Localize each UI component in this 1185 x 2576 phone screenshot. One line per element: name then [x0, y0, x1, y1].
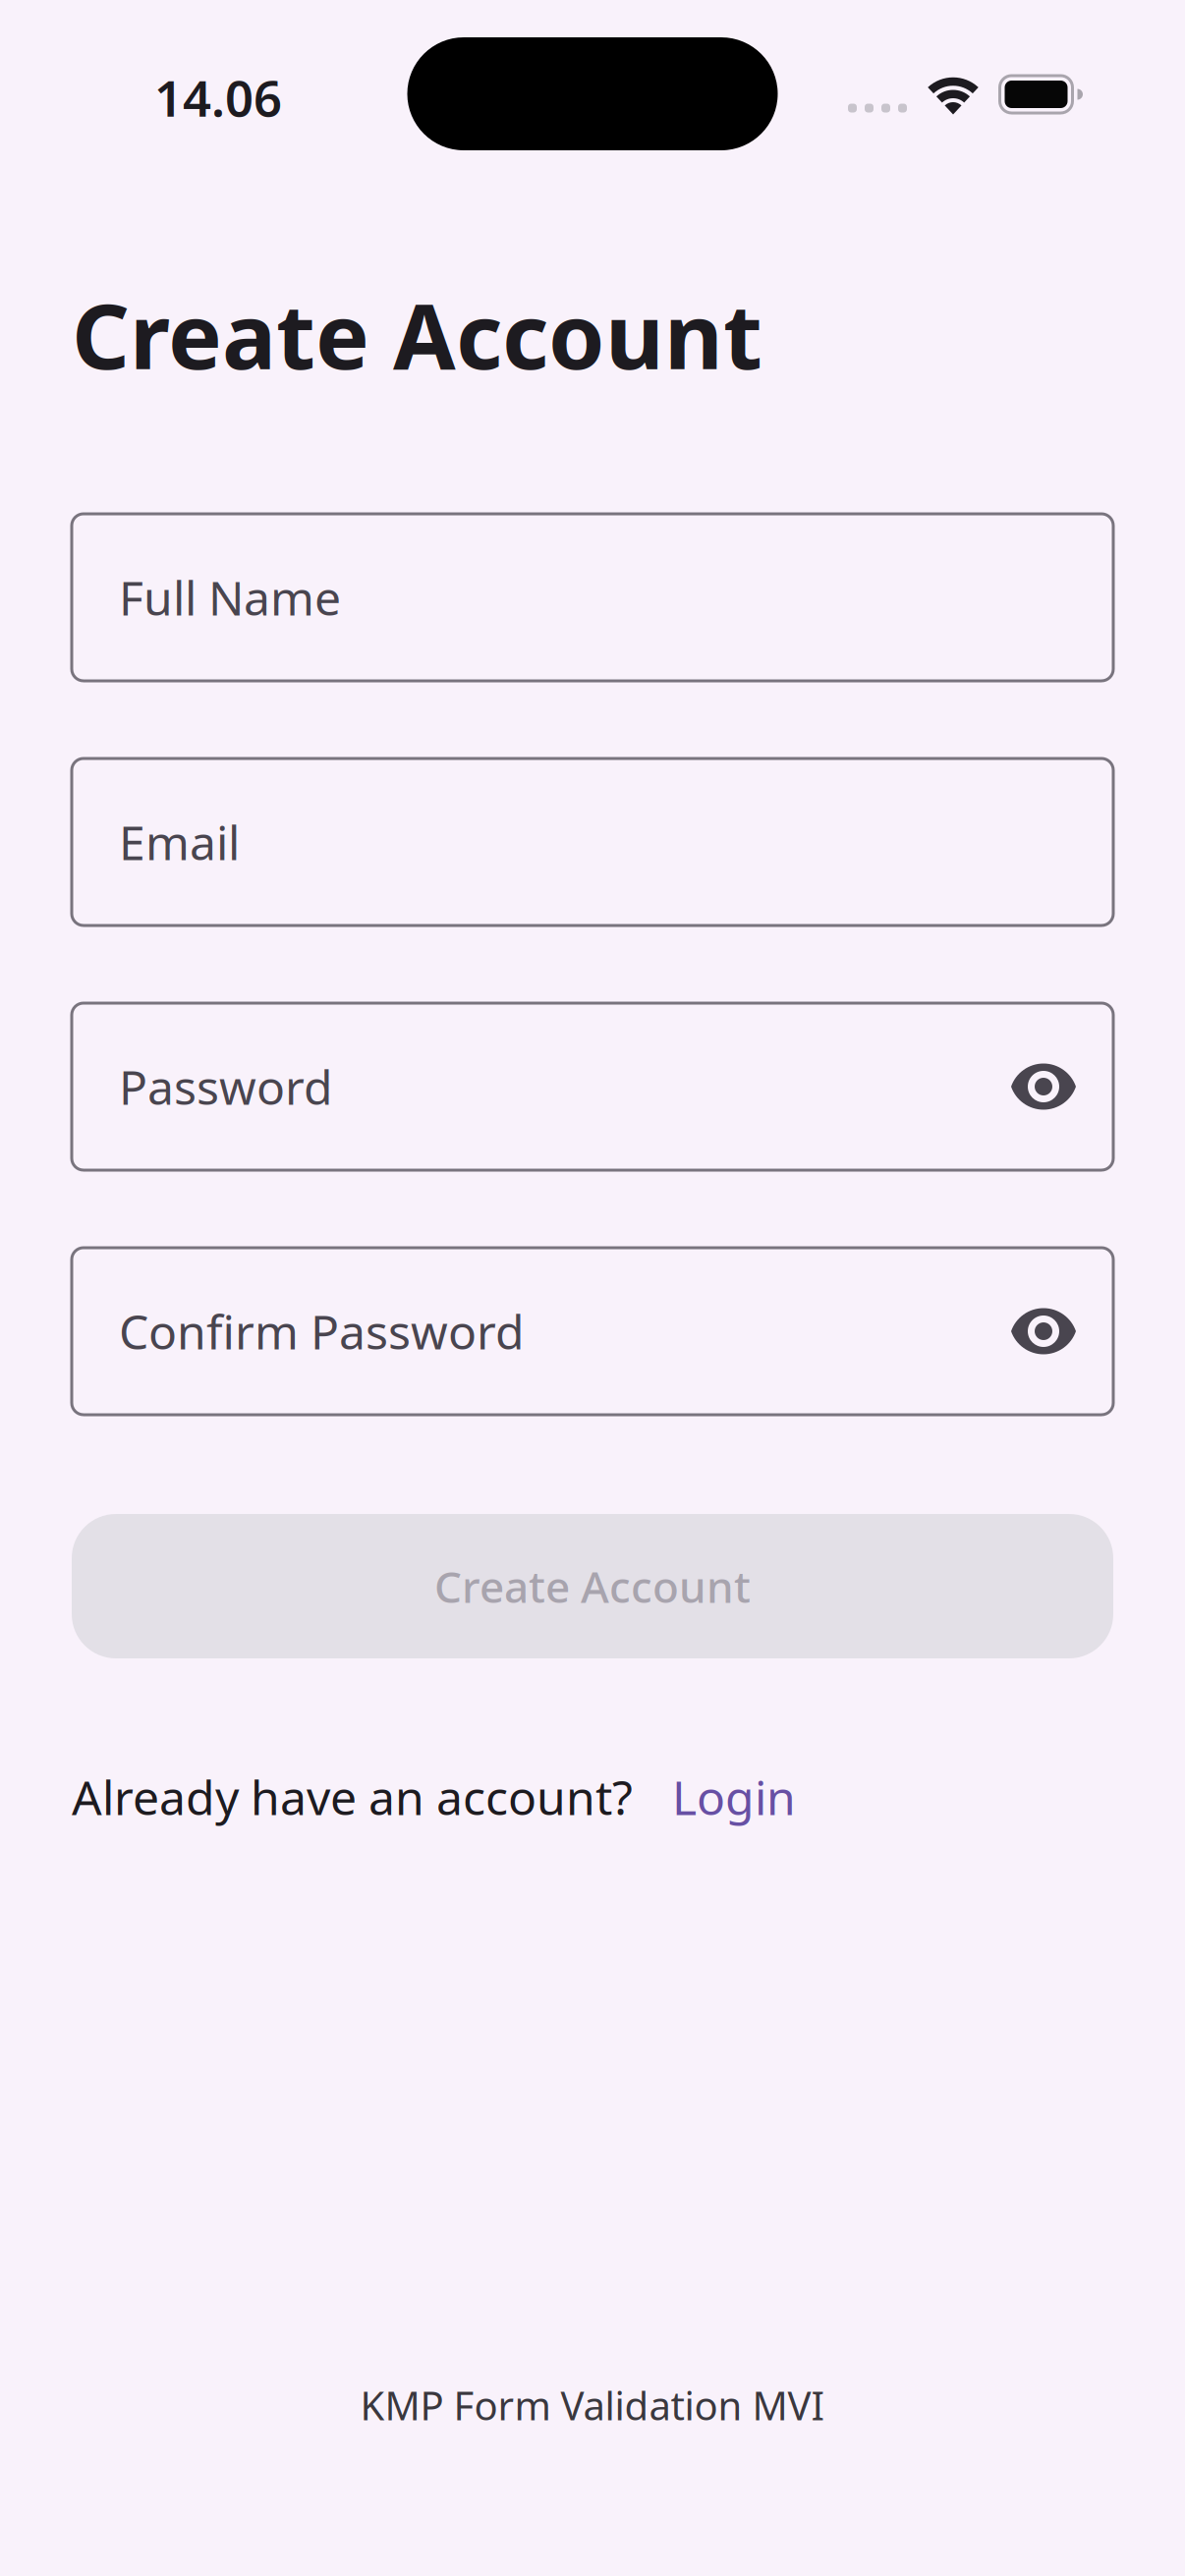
- staticText: 14.06: [154, 64, 282, 130]
- staticText: Full Name: [119, 566, 341, 629]
- button[interactable]: Confirm Password: [72, 1248, 1113, 1415]
- staticText: Create Account: [72, 274, 762, 394]
- button[interactable]: Show password: [1011, 1308, 1076, 1354]
- button[interactable]: Full Name: [72, 514, 1113, 681]
- staticText: Login: [672, 1766, 796, 1828]
- staticText: KMP Form Validation MVI: [360, 2379, 825, 2431]
- button[interactable]: Login: [672, 1766, 796, 1828]
- button[interactable]: Create Account: [72, 1514, 1113, 1658]
- staticText: Password: [119, 1055, 333, 1118]
- staticText: Email: [119, 811, 240, 873]
- staticText: Create Account: [434, 1557, 751, 1615]
- button[interactable]: Show password: [1011, 1064, 1076, 1110]
- staticText: Already have an account?: [72, 1766, 633, 1828]
- staticText: Confirm Password: [119, 1300, 525, 1362]
- button[interactable]: Password: [72, 1003, 1113, 1170]
- button[interactable]: Email: [72, 758, 1113, 925]
